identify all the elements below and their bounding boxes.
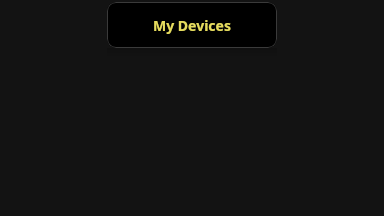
staticText: My Devices bbox=[153, 16, 231, 35]
button[interactable]: My Devices bbox=[107, 2, 277, 48]
